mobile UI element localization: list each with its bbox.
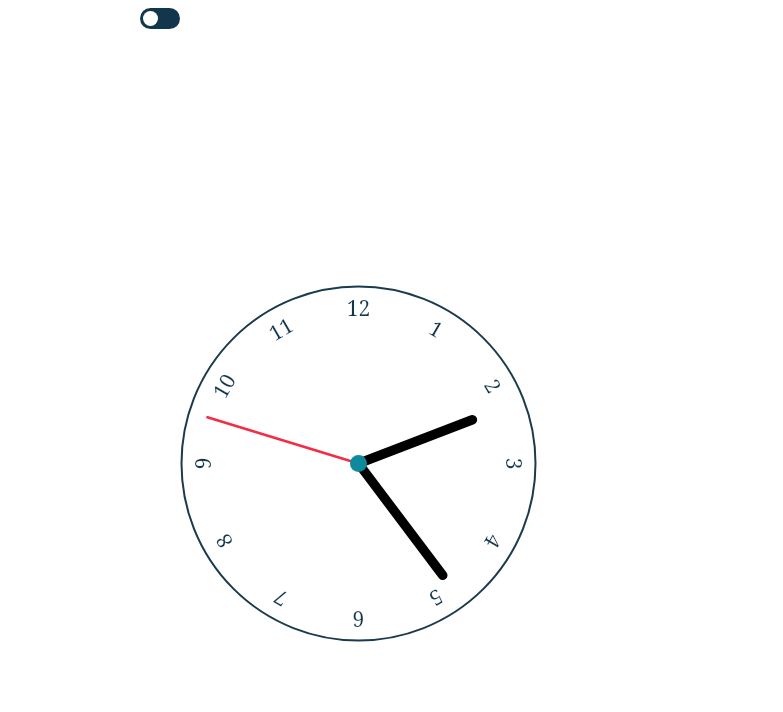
- button[interactable]: Toggle switch: [140, 8, 180, 29]
- button[interactable]: Analog clock: [0, 0, 783, 712]
